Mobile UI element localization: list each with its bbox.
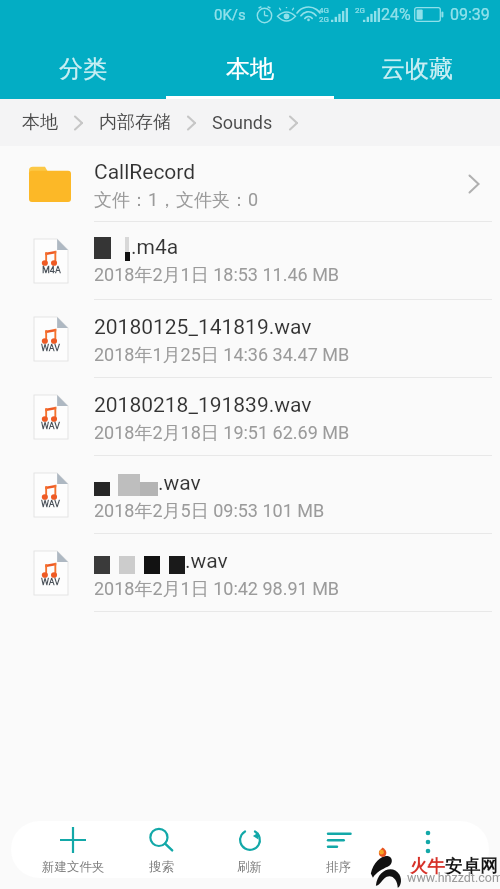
staticText: 2018年1月25日 14:36 34.47 MB [94,344,350,367]
staticText: 2018年2月18日 19:51 62.69 MB [94,422,350,445]
staticText: 2018年2月5日 09:53 101 MB [94,500,325,523]
button[interactable]: 内部存储 [99,111,171,134]
staticText: 4G [319,6,329,15]
staticText: WAV [41,499,61,510]
button[interactable]: 分类 [0,30,166,99]
staticText: 2G [319,15,329,24]
staticText: 0K/s [214,6,246,24]
staticText: 刷新 [237,859,262,875]
staticText: 20180125_141819.wav [94,315,312,340]
staticText: M4A [42,265,61,276]
staticText: WAV [41,421,61,432]
staticText: 内部存储 [99,111,171,134]
staticText: 云收藏 [381,54,453,84]
button[interactable]: WAV [0,534,500,612]
button[interactable]: WAV [0,378,500,456]
staticText: .m4a [131,235,179,257]
button[interactable]: 刷新 [205,821,294,878]
button[interactable]: 本地 [22,111,58,134]
button[interactable]: Sounds [212,112,273,133]
staticText: 排序 [326,859,351,875]
staticText: www.hnzzdt.com [407,870,500,885]
staticText: .wav [185,549,228,574]
staticText: 新建文件夹 [42,859,105,875]
staticText: 2018年2月1日 18:53 11.46 MB [94,264,340,287]
staticText: 2018年2月1日 10:42 98.91 MB [94,578,340,601]
staticText: 安卓网 [445,855,498,877]
button[interactable]: 新建文件夹 [29,821,117,878]
staticText: 分类 [59,54,107,84]
staticText: 本地 [226,54,274,84]
button[interactable]: 排序 [294,821,383,878]
staticText: 2G [355,6,365,15]
staticText: 20180218_191839.wav [94,393,312,418]
staticText: .wav [158,471,201,496]
button[interactable]: M4A [0,222,500,300]
staticText: WAV [41,343,61,354]
staticText: 文件：1，文件夹：0 [94,189,259,212]
staticText: 24% [381,5,411,24]
staticText: 09:39 [450,5,490,24]
button[interactable]: CallRecord [0,146,500,222]
staticText: WAV [41,577,61,588]
button[interactable]: WAV [0,300,500,378]
staticText: 火牛 [410,855,445,877]
button[interactable]: WAV [0,456,500,534]
button[interactable]: 本地 [166,30,333,99]
button[interactable]: More options [383,821,472,878]
staticText: 本地 [22,111,58,134]
button[interactable]: 搜索 [117,821,205,878]
staticText: Sounds [212,112,273,133]
staticText: 搜索 [149,859,174,875]
staticText: CallRecord [94,160,196,185]
button[interactable]: 云收藏 [333,30,500,99]
